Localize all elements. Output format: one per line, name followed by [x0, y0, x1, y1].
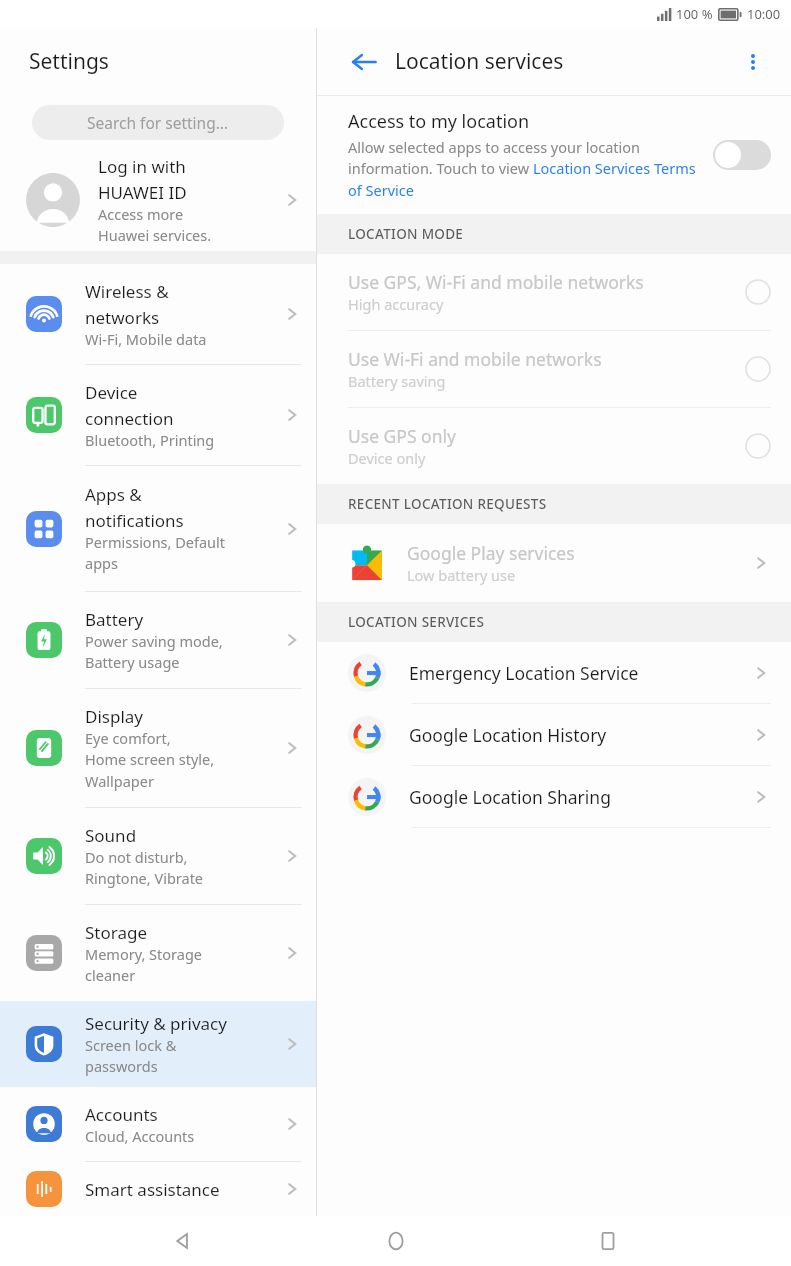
button[interactable]: Use Wi-Fi and mobile networks: [317, 331, 791, 407]
staticText: 100 %: [676, 5, 713, 23]
button[interactable]: Sound: [0, 808, 316, 904]
button[interactable]: Storage: [0, 905, 316, 1001]
staticText: RECENT LOCATION REQUESTS: [348, 495, 547, 513]
staticText: Accounts: [85, 1103, 158, 1126]
staticText: Memory, Storage cleaner: [85, 944, 203, 986]
staticText: Wi-Fi, Mobile data: [85, 329, 207, 349]
button[interactable]: Display: [0, 689, 316, 807]
staticText: Google Location History: [409, 723, 751, 747]
staticText: Search for setting...: [87, 112, 229, 133]
staticText: Security & privacy: [85, 1012, 227, 1035]
staticText: Bluetooth, Printing: [85, 430, 215, 450]
staticText: Battery saving: [348, 371, 446, 391]
staticText: Battery: [85, 608, 144, 631]
staticText: Low battery use: [407, 565, 516, 585]
button[interactable]: Access to my location: [317, 96, 791, 214]
button[interactable]: Search for setting...: [32, 105, 284, 140]
staticText: Allow selected apps to access your locat…: [348, 137, 703, 201]
staticText: Use Wi-Fi and mobile networks: [348, 347, 602, 371]
button[interactable]: Accounts: [0, 1087, 316, 1161]
staticText: Emergency Location Service: [409, 661, 751, 685]
button[interactable]: Security & privacy: [0, 1001, 316, 1087]
button[interactable]: Google Location History: [317, 704, 791, 765]
button[interactable]: Back: [153, 1216, 213, 1266]
staticText: Settings: [29, 47, 109, 76]
button[interactable]: Log in with HUAWEI ID: [0, 149, 316, 251]
staticText: Google Location Sharing: [409, 785, 751, 809]
button[interactable]: Use GPS, Wi-Fi and mobile networks: [317, 254, 791, 330]
button[interactable]: Apps & notifications: [0, 466, 316, 591]
staticText: Device only: [348, 448, 426, 468]
staticText: Device connection: [85, 381, 174, 430]
staticText: Power saving mode, Battery usage: [85, 631, 223, 673]
button[interactable]: Back: [345, 43, 383, 81]
button[interactable]: Access to my location toggle: [713, 140, 771, 170]
button[interactable]: Smart assistance: [0, 1162, 316, 1216]
staticText: Log in with HUAWEI ID: [98, 155, 187, 204]
button[interactable]: More options: [733, 42, 773, 82]
staticText: Wireless & networks: [85, 280, 169, 329]
staticText: LOCATION SERVICES: [348, 613, 485, 631]
staticText: Do not disturb, Ringtone, Vibrate: [85, 847, 204, 889]
staticText: Storage: [85, 921, 148, 944]
button[interactable]: Wireless & networks: [0, 264, 316, 364]
staticText: Google Play services: [407, 541, 575, 565]
button[interactable]: Recent apps: [578, 1216, 638, 1266]
staticText: Screen lock & passwords: [85, 1035, 177, 1077]
staticText: Cloud, Accounts: [85, 1126, 195, 1146]
staticText: Apps & notifications: [85, 483, 184, 532]
button[interactable]: Device connection: [0, 365, 316, 465]
staticText: Display: [85, 705, 143, 728]
button[interactable]: Emergency Location Service: [317, 642, 791, 703]
button[interactable]: Use GPS only: [317, 408, 791, 484]
staticText: Eye comfort, Home screen style, Wallpape…: [85, 728, 215, 792]
staticText: Use GPS, Wi-Fi and mobile networks: [348, 270, 644, 294]
button[interactable]: Google Play services: [317, 524, 791, 602]
staticText: LOCATION MODE: [348, 225, 464, 243]
staticText: Smart assistance: [85, 1178, 220, 1201]
button[interactable]: Google Location Sharing: [317, 766, 791, 827]
staticText: Permissions, Default apps: [85, 532, 226, 574]
staticText: Use GPS only: [348, 424, 456, 448]
staticText: 10:00: [747, 5, 781, 23]
staticText: High accuracy: [348, 294, 444, 314]
staticText: Access more Huawei services.: [98, 204, 212, 246]
button[interactable]: Home: [366, 1216, 426, 1266]
button[interactable]: Battery: [0, 592, 316, 688]
staticText: Sound: [85, 824, 137, 847]
staticText: Access to my location: [348, 109, 530, 134]
staticText: Location services: [395, 47, 564, 76]
